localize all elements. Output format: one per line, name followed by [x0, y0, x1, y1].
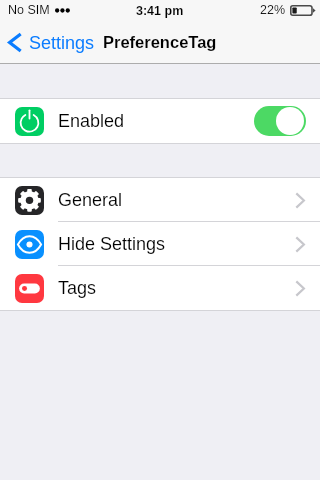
staticText: General — [58, 190, 123, 210]
staticText: Hide Settings — [58, 234, 166, 254]
button[interactable]: General — [0, 178, 320, 222]
button[interactable]: Enabled — [0, 99, 320, 143]
staticText: 3:41 pm — [136, 4, 184, 18]
button[interactable]: Settings — [0, 27, 101, 58]
staticText: 22% — [260, 3, 286, 17]
button[interactable]: Hide Settings — [0, 222, 320, 266]
button[interactable]: Enabled toggle — [254, 106, 306, 136]
staticText: PreferenceTag — [103, 33, 217, 51]
button[interactable]: Tags — [0, 266, 320, 310]
staticText: Enabled — [58, 111, 125, 131]
staticText: Settings — [29, 33, 95, 53]
staticText: No SIM — [8, 3, 50, 17]
staticText: Tags — [58, 278, 97, 298]
